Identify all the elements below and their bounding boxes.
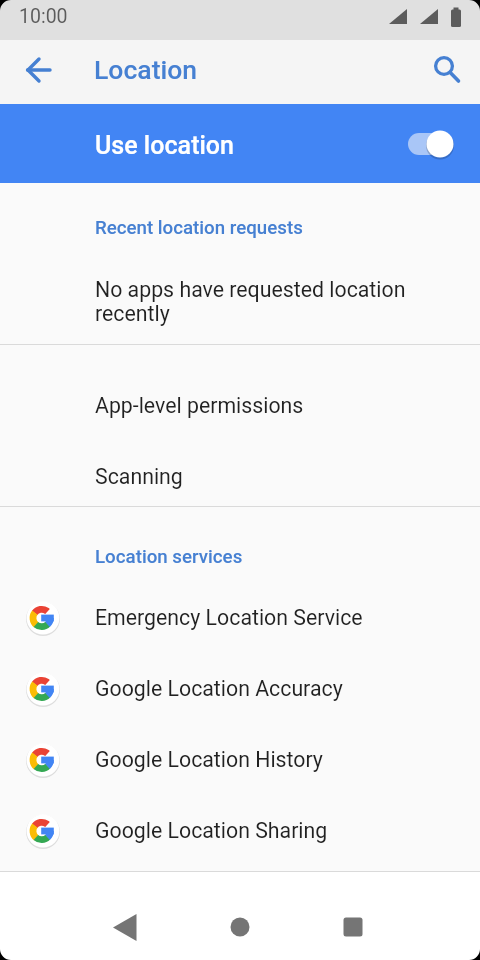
staticText: Google Location Accuracy bbox=[95, 676, 343, 701]
button[interactable]: Use location bbox=[0, 104, 480, 183]
staticText: Location bbox=[94, 54, 198, 85]
staticText: Emergency Location Service bbox=[95, 605, 363, 630]
staticText: Scanning bbox=[95, 464, 183, 489]
button[interactable]: App-level permissions bbox=[0, 370, 480, 441]
button[interactable]: No apps have requested location recently bbox=[95, 265, 480, 337]
button[interactable]: Google Location History bbox=[0, 724, 480, 795]
staticText: Use location bbox=[95, 131, 234, 160]
staticText: Location services bbox=[95, 546, 243, 568]
staticText: Google Location History bbox=[95, 747, 323, 772]
staticText: 10:00 bbox=[19, 5, 68, 28]
button[interactable]: Emergency Location Service bbox=[0, 582, 480, 653]
button[interactable] bbox=[196, 872, 284, 960]
button[interactable]: Google Location Sharing bbox=[0, 795, 480, 866]
button[interactable] bbox=[416, 40, 480, 104]
button[interactable] bbox=[311, 872, 399, 960]
staticText: Google Location Sharing bbox=[95, 818, 328, 843]
button[interactable]: Google Location Accuracy bbox=[0, 653, 480, 724]
staticText: No apps have requested location recently bbox=[95, 277, 406, 326]
staticText: Recent location requests bbox=[95, 217, 303, 239]
staticText: App-level permissions bbox=[95, 393, 304, 418]
button[interactable]: Scanning bbox=[0, 441, 480, 512]
button[interactable] bbox=[81, 872, 169, 960]
button[interactable] bbox=[0, 40, 64, 104]
